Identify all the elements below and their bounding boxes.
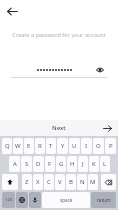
button[interactable]: G [56,156,66,172]
staticText: B [69,178,73,186]
button[interactable]: Q [2,138,12,154]
staticText: Z [25,178,29,186]
staticText: V [58,178,62,186]
button[interactable]: S [21,156,32,172]
button[interactable]: A [9,156,20,172]
button[interactable]: Next [101,122,113,134]
staticText: return [97,197,111,203]
button[interactable]: L [100,156,110,172]
staticText: T [49,142,53,150]
button[interactable]: W [13,138,23,154]
staticText: Q [5,142,10,150]
button[interactable]: J [78,156,88,172]
button[interactable]: Show password [12,63,106,77]
button[interactable]: Z [22,174,32,190]
staticText: H [70,160,75,168]
staticText: Y [61,142,65,150]
staticText: N [80,178,85,186]
button[interactable]: U [69,138,80,154]
button[interactable]: P [105,138,116,154]
button[interactable]: R [35,138,45,154]
staticText: L [103,160,107,168]
staticText: space [60,197,73,203]
staticText: W [15,142,21,150]
button[interactable]: D [33,156,44,172]
staticText: A [13,160,17,168]
staticText: R [38,142,42,150]
button[interactable]: Show password [94,64,106,76]
button[interactable]: Change keyboard [16,192,28,208]
staticText: C [47,178,51,186]
button[interactable]: Backspace [101,174,116,190]
button[interactable]: Y [57,138,68,154]
staticText: 123 [5,197,13,203]
button[interactable]: Voice input [29,192,41,208]
staticText: G [59,160,64,168]
button[interactable]: Shift [2,174,18,190]
staticText: K [92,160,96,168]
button[interactable]: T [46,138,56,154]
staticText: Create a password for your account [0,31,118,39]
button[interactable]: F [45,156,55,172]
button[interactable]: I [81,138,92,154]
button[interactable]: O [93,138,104,154]
staticText: E [27,142,31,150]
staticText: D [36,160,41,168]
staticText: P [109,142,113,150]
staticText: U [72,142,77,150]
button[interactable]: Back [3,2,21,20]
button[interactable]: X [33,174,43,190]
staticText: M [90,178,96,186]
button[interactable]: V [55,174,65,190]
staticText: F [48,160,52,168]
button[interactable]: E [24,138,34,154]
button[interactable]: C [44,174,54,190]
button[interactable]: 123 [2,192,15,208]
staticText: J [82,160,84,168]
button[interactable]: N [77,174,87,190]
button[interactable]: return [91,192,116,208]
button[interactable]: M [88,174,98,190]
button[interactable]: Next [52,124,66,132]
staticText: X [36,178,40,186]
staticText: O [96,142,101,150]
staticText: I [85,142,88,150]
button[interactable]: space [42,192,90,208]
button[interactable]: H [67,156,77,172]
button[interactable]: K [89,156,99,172]
button[interactable]: B [66,174,76,190]
staticText: S [25,160,29,168]
